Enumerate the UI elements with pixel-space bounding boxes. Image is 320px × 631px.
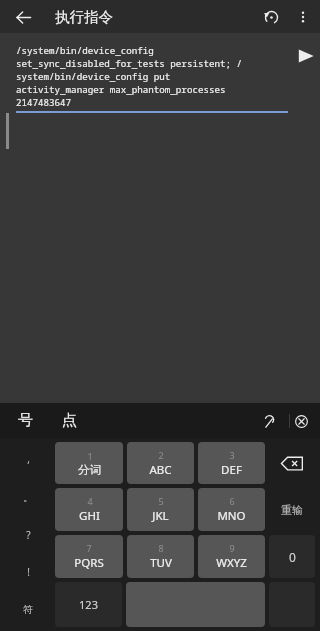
staticText: 分词 — [78, 463, 101, 477]
staticText: ? — [26, 528, 31, 542]
button[interactable]: ? — [4, 517, 52, 552]
button[interactable]: Backspace — [268, 441, 316, 485]
staticText: 5 — [158, 495, 164, 507]
staticText: 9 — [229, 542, 235, 554]
button[interactable]: Back — [8, 2, 38, 32]
staticText: 重输 — [281, 503, 303, 517]
staticText: 执行指令 — [55, 8, 113, 26]
staticText: TUV — [150, 555, 172, 571]
button[interactable]: 重输 — [268, 487, 316, 532]
staticText: 0 — [289, 549, 296, 565]
staticText: 6 — [229, 495, 235, 507]
button[interactable]: Clipboard — [256, 408, 282, 434]
staticText: 1 — [87, 450, 93, 462]
staticText: DEF — [221, 462, 242, 478]
staticText: 7 — [86, 542, 92, 554]
staticText: GHI — [79, 508, 100, 524]
button[interactable]: 符 — [4, 591, 52, 628]
button[interactable]: 9 — [198, 535, 265, 578]
staticText: 4 — [87, 495, 93, 507]
staticText: 点 — [62, 411, 77, 430]
staticText: PQRS — [74, 555, 104, 571]
staticText: , — [27, 452, 30, 466]
button[interactable]: 3 — [198, 442, 265, 484]
button[interactable]: History — [257, 3, 285, 31]
staticText: WXYZ — [216, 555, 247, 571]
button[interactable]: 2 — [127, 442, 194, 484]
staticText: 。 — [23, 491, 33, 504]
button[interactable]: 8 — [127, 535, 194, 578]
staticText: 2 — [158, 449, 164, 461]
staticText: 符 — [23, 603, 33, 616]
staticText: ABC — [149, 462, 172, 478]
button[interactable]: More options — [290, 4, 316, 30]
button[interactable]: 7 — [55, 535, 123, 578]
staticText: /system/bin/device_config set_sync_disab… — [16, 44, 243, 109]
staticText: 8 — [158, 542, 164, 554]
staticText: 号 — [18, 411, 33, 430]
button[interactable]: 。 — [4, 479, 52, 515]
button[interactable]: Run command — [292, 33, 320, 79]
button[interactable]: 4 — [55, 488, 123, 531]
button[interactable]: ! — [4, 554, 52, 589]
button[interactable]: 6 — [198, 488, 265, 531]
staticText: ! — [27, 565, 30, 579]
button[interactable]: , — [4, 441, 52, 477]
button[interactable]: 5 — [127, 488, 194, 531]
staticText: 123 — [79, 597, 98, 612]
button[interactable]: 1 — [55, 442, 123, 484]
staticText: JKL — [152, 508, 169, 524]
button[interactable]: 0 — [269, 535, 315, 578]
button[interactable]: 123 — [55, 582, 122, 627]
staticText: MNO — [217, 508, 246, 524]
staticText: 3 — [229, 449, 235, 461]
button[interactable]: Close keyboard — [288, 408, 314, 434]
